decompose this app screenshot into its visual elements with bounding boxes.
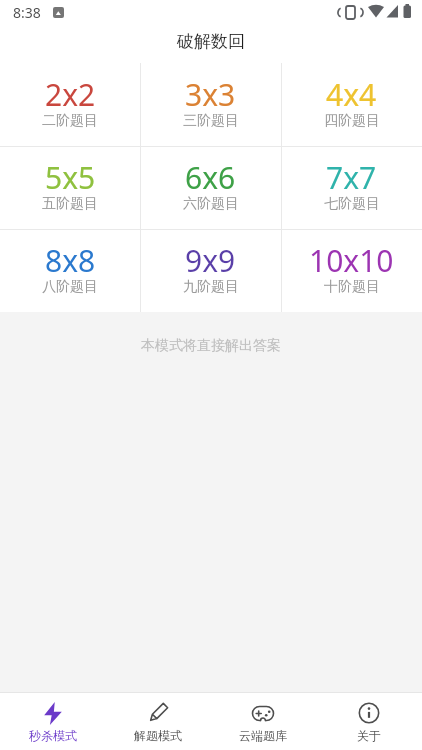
button[interactable]: 秒杀模式 <box>0 693 105 750</box>
button[interactable]: 5x5 <box>0 146 140 229</box>
staticText: 三阶题目 <box>183 112 239 130</box>
button[interactable]: 9x9 <box>140 229 281 312</box>
button[interactable]: 7x7 <box>281 146 422 229</box>
button[interactable]: 3x3 <box>140 63 281 146</box>
button[interactable]: 云端题库 <box>210 693 316 750</box>
staticText: 云端题库 <box>239 728 287 743</box>
staticText: 10x10 <box>309 240 394 281</box>
staticText: 四阶题目 <box>324 112 380 130</box>
staticText: 8:38 <box>13 3 41 22</box>
staticText: 本模式将直接解出答案 <box>141 337 281 355</box>
staticText: 5x5 <box>45 157 96 198</box>
staticText: 3x3 <box>185 74 236 115</box>
staticText: 十阶题目 <box>324 278 380 296</box>
staticText: 2x2 <box>45 74 96 115</box>
staticText: 二阶题目 <box>42 112 98 130</box>
staticText: 破解数回 <box>177 31 245 52</box>
button[interactable]: 4x4 <box>281 63 422 146</box>
staticText: 9x9 <box>185 240 236 281</box>
staticText: 九阶题目 <box>183 278 239 296</box>
button[interactable]: 8x8 <box>0 229 140 312</box>
button[interactable]: 解题模式 <box>105 693 210 750</box>
staticText: 关于 <box>357 728 381 743</box>
button[interactable]: 10x10 <box>281 229 422 312</box>
staticText: 秒杀模式 <box>29 728 77 743</box>
staticText: 6x6 <box>185 157 236 198</box>
button[interactable]: 6x6 <box>140 146 281 229</box>
staticText: 8x8 <box>45 240 96 281</box>
staticText: 八阶题目 <box>42 278 98 296</box>
staticText: 五阶题目 <box>42 195 98 213</box>
staticText: 六阶题目 <box>183 195 239 213</box>
button[interactable]: 关于 <box>316 693 422 750</box>
staticText: 4x4 <box>326 74 377 115</box>
button[interactable]: 2x2 <box>0 63 140 146</box>
staticText: 七阶题目 <box>324 195 380 213</box>
staticText: 解题模式 <box>134 728 182 743</box>
staticText: 7x7 <box>326 157 377 198</box>
